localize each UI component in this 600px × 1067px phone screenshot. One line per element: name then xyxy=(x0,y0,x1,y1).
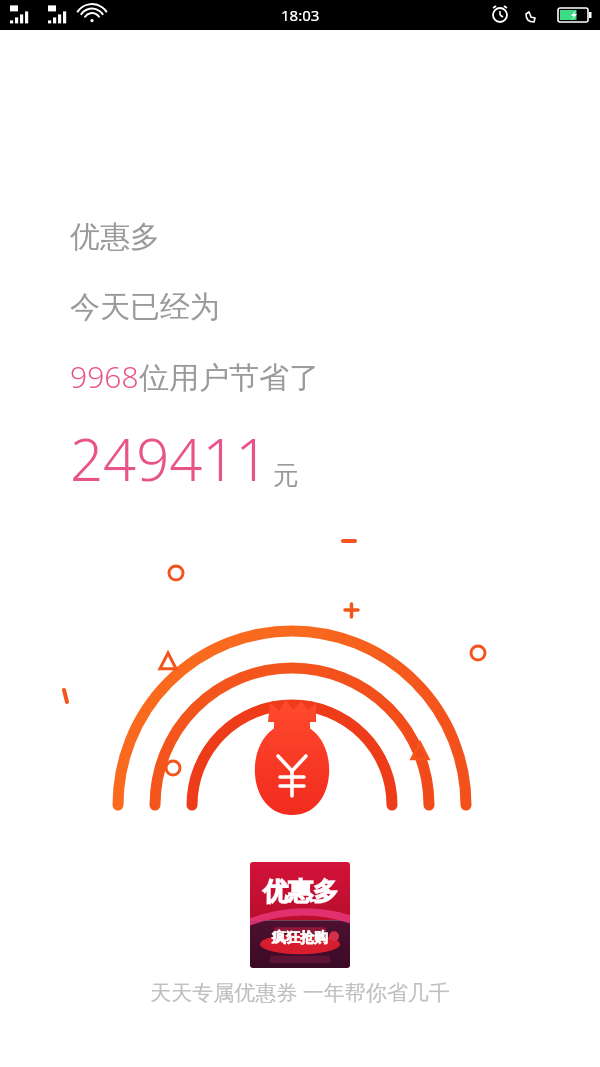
staticText: 元 xyxy=(273,459,299,492)
staticText: 18:03 xyxy=(281,5,320,25)
staticText: 今天已经为 xyxy=(70,288,220,326)
staticText: 优惠多 xyxy=(263,876,338,907)
staticText: 天天专属优惠券 一年帮你省几千 xyxy=(0,978,600,1007)
staticText: 优惠多 xyxy=(70,218,160,256)
button[interactable]: 优惠多 疯狂抢购 广告 xyxy=(250,862,350,968)
staticText: 249411 xyxy=(70,419,269,498)
staticText: 疯狂抢购 xyxy=(272,929,328,947)
staticText: 9968 xyxy=(70,356,139,397)
staticText: 位用户节省了 xyxy=(139,359,319,397)
